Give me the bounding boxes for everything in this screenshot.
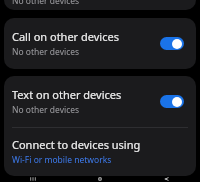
button[interactable]: Home <box>66 176 133 182</box>
button[interactable]: Connect to devices using <box>4 128 196 176</box>
staticText: Text on other devices <box>12 87 122 102</box>
button[interactable]: Text on other devices <box>4 80 196 123</box>
staticText: No other devices <box>12 46 80 58</box>
staticText: Wi-Fi or mobile networks <box>12 154 112 166</box>
button[interactable]: No other devices <box>4 0 196 10</box>
staticText: No other devices <box>12 104 80 116</box>
button[interactable]: Back <box>133 176 200 182</box>
staticText: Call on other devices <box>12 29 119 44</box>
button[interactable]: Toggle Call on other devices <box>156 33 188 54</box>
staticText: Connect to devices using <box>12 137 141 152</box>
staticText: No other devices <box>12 0 80 5</box>
button[interactable]: Recent apps <box>0 176 66 182</box>
button[interactable]: Call on other devices <box>4 22 196 65</box>
button[interactable]: Toggle Text on other devices <box>156 91 188 112</box>
